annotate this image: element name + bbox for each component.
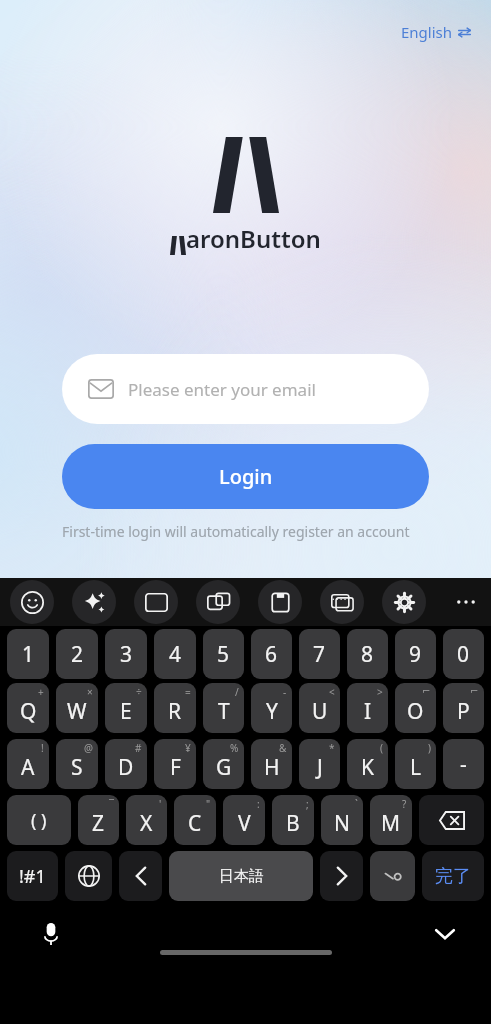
staticText: K xyxy=(361,753,374,782)
staticText: # xyxy=(135,741,142,755)
staticText: I xyxy=(364,697,372,726)
staticText: ; xyxy=(306,797,309,811)
staticText: G xyxy=(216,753,232,782)
button[interactable]: > xyxy=(347,683,388,733)
button[interactable]: ⌐ xyxy=(443,683,484,733)
button[interactable]: ⌐ xyxy=(395,683,436,733)
staticText: W xyxy=(67,697,87,726)
button[interactable]: 3 xyxy=(105,629,147,679)
button[interactable]: / xyxy=(203,683,244,733)
button[interactable]: * xyxy=(299,739,340,789)
button[interactable]: Move cursor right xyxy=(320,851,363,901)
staticText: aronButton xyxy=(186,222,321,255)
button[interactable]: Hide keyboard xyxy=(427,916,463,952)
button[interactable]: 完了 xyxy=(422,851,484,901)
button[interactable]: Backspace xyxy=(419,795,484,845)
staticText: 4 xyxy=(169,640,182,669)
staticText: N xyxy=(334,809,350,838)
button[interactable]: 7 xyxy=(299,629,340,679)
button[interactable]: 4 xyxy=(154,629,196,679)
staticText: 完了 xyxy=(435,865,471,888)
button[interactable]: < xyxy=(299,683,340,733)
button[interactable]: & xyxy=(251,739,292,789)
button[interactable]: 8 xyxy=(347,629,388,679)
button[interactable]: ( xyxy=(347,739,388,789)
staticText: 9 xyxy=(409,640,422,669)
staticText: + xyxy=(38,685,44,699)
staticText: U xyxy=(312,697,328,726)
button[interactable]: ( ) xyxy=(7,795,71,845)
button[interactable]: ` xyxy=(321,795,363,845)
staticText: ¥ xyxy=(185,741,191,755)
button[interactable]: Voice input xyxy=(34,917,68,951)
staticText: Y xyxy=(266,697,278,726)
button[interactable]: English xyxy=(395,18,477,46)
button[interactable]: : xyxy=(223,795,265,845)
button[interactable]: % xyxy=(203,739,244,789)
staticText: First-time login will automatically regi… xyxy=(62,522,429,541)
button[interactable]: Emoji xyxy=(10,580,54,624)
staticText: M xyxy=(381,809,401,838)
button[interactable]: 9 xyxy=(395,629,436,679)
button[interactable]: 5 xyxy=(203,629,244,679)
button[interactable]: = xyxy=(154,683,196,733)
button[interactable]: Login xyxy=(62,444,429,509)
button[interactable]: 日本語 xyxy=(169,851,313,901)
button[interactable]: Move cursor left xyxy=(119,851,162,901)
staticText: H xyxy=(264,753,280,782)
staticText: C xyxy=(188,809,202,838)
staticText: / xyxy=(235,685,239,699)
staticText: 3 xyxy=(120,640,133,669)
button[interactable]: ) xyxy=(395,739,436,789)
staticText: ¯ xyxy=(109,797,114,811)
button[interactable]: Settings xyxy=(382,580,426,624)
button[interactable]: ! xyxy=(7,739,49,789)
staticText: 日本語 xyxy=(219,867,264,886)
button[interactable]: AI suggestions xyxy=(72,580,116,624)
staticText: English xyxy=(401,22,453,42)
staticText: J xyxy=(317,753,323,782)
staticText: × xyxy=(87,685,93,699)
button[interactable]: Change language xyxy=(65,851,112,901)
button[interactable]: ¯ xyxy=(78,795,119,845)
button[interactable]: " xyxy=(174,795,216,845)
button[interactable]: 2 xyxy=(56,629,98,679)
button[interactable]: @ xyxy=(56,739,98,789)
button[interactable]: !#1 xyxy=(7,851,58,901)
button[interactable]: 6 xyxy=(251,629,292,679)
staticText: & xyxy=(279,741,287,755)
button[interactable]: 1 xyxy=(7,629,49,679)
staticText: > xyxy=(377,685,383,699)
staticText: 8 xyxy=(361,640,374,669)
staticText: T xyxy=(218,697,230,726)
staticText: E xyxy=(120,697,132,726)
button[interactable]: ? xyxy=(370,795,412,845)
button[interactable]: Switch keyboard xyxy=(320,580,364,624)
button[interactable]: - xyxy=(443,739,484,789)
staticText: 6 xyxy=(265,640,278,669)
button[interactable]: ; xyxy=(272,795,314,845)
staticText: P xyxy=(457,697,470,726)
staticText: Login xyxy=(219,463,273,490)
button[interactable]: Clipboard xyxy=(258,580,302,624)
button[interactable]: × xyxy=(56,683,98,733)
button[interactable]: ¥ xyxy=(154,739,196,789)
staticText: ⌐ xyxy=(422,685,431,697)
button[interactable]: 0 xyxy=(443,629,484,679)
button[interactable]: Translate xyxy=(196,580,240,624)
button[interactable]: Symbols xyxy=(134,580,178,624)
staticText: ( xyxy=(380,741,383,755)
button[interactable]: Voice input xyxy=(370,851,415,901)
staticText: ) xyxy=(428,741,431,755)
button[interactable]: ' xyxy=(126,795,167,845)
staticText: O xyxy=(407,697,424,726)
button[interactable]: More options xyxy=(444,580,488,624)
button[interactable]: Please enter your email xyxy=(62,354,429,424)
button[interactable]: - xyxy=(251,683,292,733)
button[interactable]: ÷ xyxy=(105,683,147,733)
button[interactable]: + xyxy=(7,683,49,733)
staticText: V xyxy=(238,809,251,838)
staticText: : xyxy=(257,797,260,811)
button[interactable]: # xyxy=(105,739,147,789)
staticText: Z xyxy=(92,809,105,838)
